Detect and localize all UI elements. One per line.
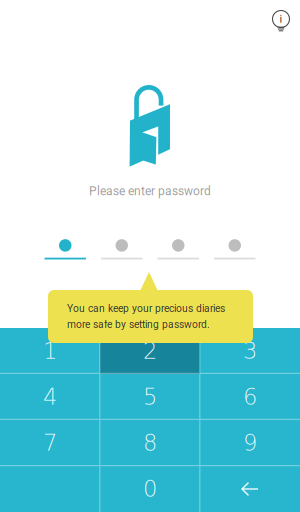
staticText: 8 xyxy=(143,430,157,456)
staticText: 0 xyxy=(143,476,157,502)
button[interactable]: 6 xyxy=(200,374,300,420)
button[interactable] xyxy=(0,466,100,512)
button[interactable] xyxy=(200,466,300,512)
staticText: 6 xyxy=(243,384,257,410)
staticText: more safe by setting password. xyxy=(67,318,210,330)
button[interactable]: 5 xyxy=(100,374,200,420)
button[interactable]: 3 xyxy=(200,328,300,374)
staticText: 9 xyxy=(243,430,257,456)
button[interactable]: 9 xyxy=(200,420,300,466)
staticText: 4 xyxy=(43,384,57,410)
staticText: 7 xyxy=(43,430,57,456)
button[interactable]: 0 xyxy=(100,466,200,512)
staticText: 1 xyxy=(43,338,57,364)
staticText: You can keep your precious diaries xyxy=(67,302,225,314)
staticText: 3 xyxy=(243,338,257,364)
staticText: i xyxy=(279,13,282,25)
staticText: Please enter password xyxy=(89,184,211,198)
staticText: 2 xyxy=(143,338,157,364)
button[interactable]: 2 xyxy=(100,328,200,374)
button[interactable]: 7 xyxy=(0,420,100,466)
staticText: 5 xyxy=(143,384,157,410)
button[interactable]: Hint xyxy=(271,9,291,34)
button[interactable]: 4 xyxy=(0,374,100,420)
button[interactable]: 1 xyxy=(0,328,100,374)
button[interactable]: 8 xyxy=(100,420,200,466)
